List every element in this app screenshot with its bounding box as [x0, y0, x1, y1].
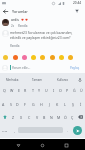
staticText: Yanıtla: [18, 24, 28, 28]
button[interactable]: V: [33, 111, 41, 123]
button[interactable]: U: [43, 84, 50, 96]
button[interactable]: Ş: [69, 98, 77, 110]
button[interactable]: K: [53, 98, 61, 110]
button[interactable]: W: [8, 84, 15, 96]
button[interactable]: B: [41, 111, 48, 123]
staticText: Ğ: [73, 88, 76, 93]
button[interactable]: C: [25, 111, 33, 123]
staticText: V: [36, 115, 39, 120]
staticText: .: [67, 129, 68, 133]
button[interactable]: P: [64, 84, 71, 96]
staticText: N: [50, 115, 53, 120]
staticText: G: [32, 102, 35, 107]
button[interactable]: D: [14, 98, 21, 110]
staticText: S: [10, 102, 12, 107]
button[interactable]: Filter: [72, 6, 82, 16]
button[interactable]: O: [57, 84, 64, 96]
button[interactable]: S: [7, 98, 14, 110]
button[interactable]: Z: [9, 111, 17, 123]
button[interactable]: Voice input: [75, 73, 85, 86]
button[interactable]: N: [48, 111, 55, 123]
staticText: W: [10, 88, 14, 93]
staticText: X: [20, 115, 23, 120]
button[interactable]: Merhaba: [0, 73, 25, 86]
button[interactable]: Recents: [61, 140, 72, 150]
button[interactable]: X: [17, 111, 25, 123]
staticText: Ç: [71, 115, 74, 120]
button[interactable]: Emoji: [22, 55, 27, 60]
button[interactable]: Ğ: [71, 84, 78, 96]
button[interactable]: Home: [37, 140, 48, 150]
staticText: U: [45, 88, 48, 93]
button[interactable]: Delete: [76, 111, 85, 123]
staticText: M: [57, 115, 61, 120]
staticText: O: [59, 88, 62, 93]
button[interactable]: Back: [13, 140, 24, 150]
staticText: Yorum ekle...: [12, 66, 31, 70]
button[interactable]: H: [37, 98, 45, 110]
button[interactable]: F: [21, 98, 29, 110]
button[interactable]: Shift: [0, 111, 9, 123]
button[interactable]: Emoji: [40, 55, 45, 60]
staticText: Tamam: [32, 78, 43, 82]
button[interactable]: Yanıtla: [10, 44, 20, 48]
button[interactable]: Ö: [62, 111, 69, 123]
staticText: Z: [12, 115, 15, 120]
staticText: R: [24, 88, 27, 93]
button[interactable]: Emoji: [3, 55, 8, 60]
staticText: Ş: [72, 102, 74, 107]
staticText: F: [24, 102, 26, 107]
staticText: C: [28, 115, 31, 120]
button[interactable]: M: [55, 111, 62, 123]
button[interactable]: Y: [36, 84, 43, 96]
staticText: 2s: [11, 24, 15, 28]
button[interactable]: Emoji: [50, 55, 55, 60]
staticText: ,: [14, 129, 15, 133]
button[interactable]: Kullanıcı: [50, 73, 75, 86]
staticText: D: [16, 102, 19, 107]
staticText: H: [40, 102, 43, 107]
button[interactable]: Emoji: [13, 55, 18, 60]
staticText: Q: [3, 88, 6, 93]
button[interactable]: Back: [0, 6, 10, 16]
button[interactable]: Emoji: [31, 55, 36, 60]
staticText: P: [66, 88, 69, 93]
button[interactable]: I: [50, 84, 57, 96]
button[interactable]: Q: [0, 84, 8, 96]
button[interactable]: Paylaş: [70, 66, 80, 70]
staticText: B: [43, 115, 46, 120]
button[interactable]: Emoji: [68, 55, 73, 60]
staticText: Kullanıcı: [57, 78, 69, 82]
staticText: 20:44: [73, 1, 82, 5]
button[interactable]: ?123: [0, 123, 10, 138]
staticText: E: [18, 88, 20, 93]
button[interactable]: Tamam: [25, 73, 50, 86]
button[interactable]: Send: [73, 126, 82, 135]
button[interactable]: Ü: [78, 84, 85, 96]
button[interactable]: R: [22, 84, 29, 96]
staticText: T: [32, 88, 34, 93]
button[interactable]: İ: [77, 98, 85, 110]
staticText: mehmet23 Sorularınızı ve çok kazandım, e…: [10, 30, 82, 40]
staticText: ?123: [2, 129, 8, 132]
button[interactable]: J: [45, 98, 53, 110]
button[interactable]: A: [0, 98, 7, 110]
staticText: Ü: [80, 88, 83, 93]
staticText: Yorumlar: [12, 9, 28, 14]
staticText: A: [2, 102, 5, 107]
button[interactable]: T: [29, 84, 36, 96]
button[interactable]: G: [29, 98, 37, 110]
staticText: Yanıtla: [10, 44, 20, 48]
button[interactable]: L: [61, 98, 69, 110]
button[interactable]: Emoji: [59, 55, 64, 60]
staticText: L: [64, 102, 66, 107]
button[interactable]: E: [15, 84, 22, 96]
staticText: Ö: [64, 115, 67, 120]
button[interactable]: ,: [11, 123, 17, 138]
button[interactable]: Yanıtla: [18, 24, 28, 28]
staticText: J: [49, 102, 50, 107]
staticText: Paylaş: [70, 66, 80, 70]
button[interactable]: Ç: [69, 111, 76, 123]
